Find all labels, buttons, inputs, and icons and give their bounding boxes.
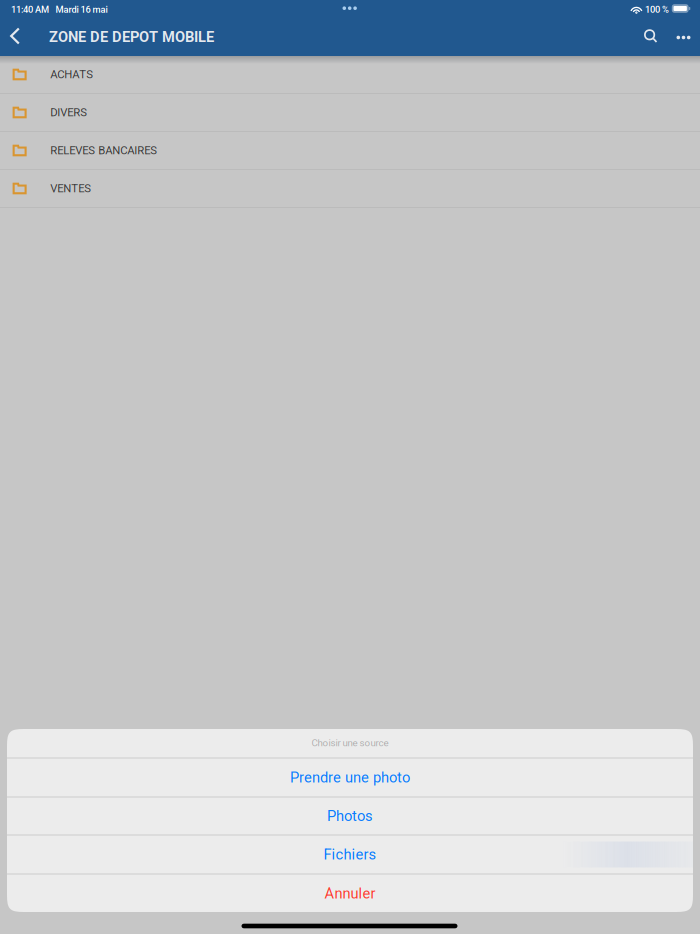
staticText: ZONE DE DEPOT MOBILE [49,28,214,46]
staticText: VENTES [50,182,91,195]
button[interactable]: Prendre une photo [7,758,693,797]
button[interactable]: Search [634,17,667,57]
staticText: Annuler [324,885,375,902]
staticText: DIVERS [50,106,87,119]
button[interactable]: DIVERS [0,94,700,132]
staticText: Mardi 16 mai [55,4,107,15]
button[interactable]: More options [667,19,700,56]
button[interactable]: ACHATS [0,56,700,94]
staticText: Fichiers [323,846,376,863]
staticText: Choisir une source [311,737,388,749]
staticText: 11:40 AM [11,4,49,15]
button[interactable]: Fichiers [7,835,693,874]
staticText: Photos [327,807,373,825]
staticText: RELEVES BANCAIRES [50,144,157,157]
staticText: Prendre une photo [290,769,410,786]
button[interactable]: Back [0,19,39,56]
staticText: 100 % [645,4,669,15]
button[interactable]: RELEVES BANCAIRES [0,132,700,170]
button[interactable]: Annuler [7,874,693,912]
staticText: ACHATS [50,68,93,81]
button[interactable]: Photos [7,797,693,835]
button[interactable]: VENTES [0,170,700,208]
